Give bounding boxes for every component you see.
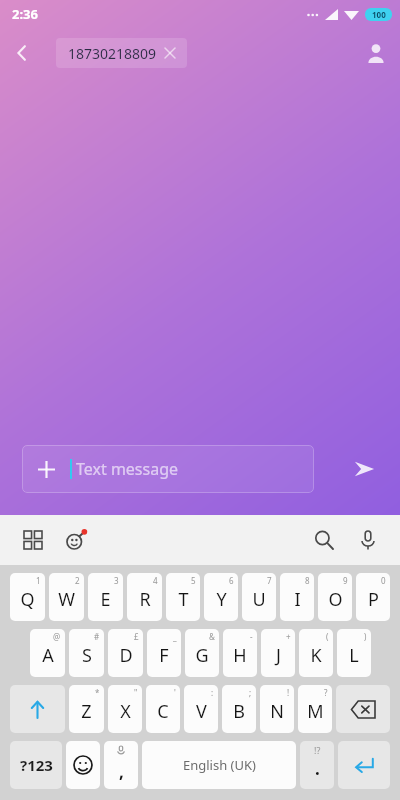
staticText: ; bbox=[249, 687, 252, 698]
button[interactable]: 1 bbox=[10, 573, 45, 621]
button[interactable]: @ bbox=[30, 629, 65, 677]
button[interactable]: : bbox=[184, 685, 218, 733]
staticText: 4 bbox=[153, 575, 158, 586]
staticText: 2 bbox=[75, 575, 80, 586]
staticText: Y bbox=[216, 587, 227, 612]
button[interactable]: 0 bbox=[356, 573, 390, 621]
staticText: ( bbox=[326, 631, 329, 642]
staticText: O bbox=[328, 587, 343, 612]
staticText: " bbox=[134, 687, 138, 698]
staticText: F bbox=[159, 643, 169, 668]
button[interactable]: Back bbox=[0, 31, 44, 75]
staticText: , bbox=[119, 760, 124, 783]
staticText: + bbox=[286, 631, 291, 642]
staticText: @ bbox=[53, 631, 61, 642]
staticText: U bbox=[252, 587, 266, 612]
staticText: J bbox=[276, 643, 281, 668]
staticText: R bbox=[139, 587, 151, 612]
staticText: ) bbox=[364, 631, 367, 642]
staticText: 7 bbox=[267, 575, 272, 586]
staticText: D bbox=[119, 643, 133, 668]
staticText: # bbox=[94, 631, 100, 642]
button[interactable]: 2 bbox=[49, 573, 84, 621]
button[interactable]: 5 bbox=[166, 573, 200, 621]
button[interactable]: Send bbox=[340, 445, 388, 493]
staticText: ? bbox=[324, 687, 328, 698]
staticText: B bbox=[233, 699, 245, 724]
staticText: T bbox=[178, 587, 189, 612]
staticText: C bbox=[157, 699, 169, 724]
staticText: M bbox=[307, 699, 324, 724]
button[interactable]: & bbox=[185, 629, 219, 677]
button[interactable]: ; bbox=[222, 685, 256, 733]
button[interactable]: - bbox=[223, 629, 257, 677]
staticText: 6 bbox=[229, 575, 234, 586]
staticText: 3 bbox=[114, 575, 119, 586]
button[interactable]: ' bbox=[146, 685, 180, 733]
button[interactable]: Contact bbox=[352, 29, 400, 77]
staticText: & bbox=[209, 631, 215, 642]
button[interactable]: , bbox=[104, 741, 138, 789]
button[interactable]: ( bbox=[299, 629, 333, 677]
staticText: - bbox=[250, 631, 253, 642]
staticText: G bbox=[195, 643, 209, 668]
button[interactable]: _ bbox=[147, 629, 181, 677]
button[interactable]: 6 bbox=[204, 573, 238, 621]
button[interactable]: 7 bbox=[242, 573, 276, 621]
button[interactable]: English (UK) bbox=[142, 741, 296, 789]
staticText: 9 bbox=[343, 575, 348, 586]
button[interactable] bbox=[66, 741, 100, 789]
staticText: 18730218809 bbox=[68, 44, 157, 63]
staticText: L bbox=[349, 643, 359, 668]
button[interactable]: 4 bbox=[127, 573, 162, 621]
staticText: E bbox=[100, 587, 111, 612]
button[interactable]: ! bbox=[260, 685, 294, 733]
button[interactable]: ) bbox=[337, 629, 371, 677]
staticText: H bbox=[233, 643, 247, 668]
button[interactable]: !? bbox=[300, 741, 334, 789]
button[interactable]: Enter bbox=[338, 741, 390, 789]
button[interactable]: Voice input bbox=[350, 522, 386, 558]
staticText: S bbox=[82, 643, 92, 668]
staticText: A bbox=[42, 643, 54, 668]
button[interactable]: + bbox=[261, 629, 295, 677]
staticText: English (UK) bbox=[183, 756, 256, 774]
staticText: !? bbox=[314, 744, 321, 756]
staticText: Q bbox=[20, 587, 35, 612]
button[interactable]: Stickers bbox=[58, 522, 94, 558]
button[interactable]: # bbox=[69, 629, 104, 677]
button[interactable]: 9 bbox=[318, 573, 352, 621]
button[interactable]: £ bbox=[108, 629, 143, 677]
staticText: ! bbox=[287, 687, 290, 698]
staticText: 2:36 bbox=[12, 5, 38, 23]
staticText: : bbox=[211, 687, 214, 698]
staticText: 100 bbox=[372, 9, 386, 20]
staticText: X bbox=[120, 699, 131, 724]
staticText: 0 bbox=[381, 575, 386, 586]
button[interactable]: 8 bbox=[280, 573, 314, 621]
staticText: * bbox=[95, 687, 100, 698]
staticText: I bbox=[294, 587, 301, 612]
staticText: £ bbox=[134, 631, 139, 642]
button[interactable]: 18730218809 bbox=[56, 38, 187, 68]
button[interactable]: Apps bbox=[16, 523, 50, 557]
staticText: P bbox=[368, 587, 379, 612]
staticText: 8 bbox=[305, 575, 310, 586]
button[interactable] bbox=[10, 685, 65, 733]
staticText: Text message bbox=[76, 458, 179, 480]
button[interactable]: Search bbox=[306, 522, 342, 558]
staticText: N bbox=[270, 699, 284, 724]
button[interactable]: ?123 bbox=[10, 741, 62, 789]
staticText: W bbox=[58, 587, 75, 612]
button[interactable]: " bbox=[108, 685, 142, 733]
button[interactable]: Backspace bbox=[336, 685, 390, 733]
button[interactable]: ? bbox=[298, 685, 332, 733]
staticText: K bbox=[310, 643, 322, 668]
button[interactable]: * bbox=[69, 685, 104, 733]
staticText: ' bbox=[174, 687, 176, 698]
staticText: ?123 bbox=[20, 755, 53, 775]
staticText: 1 bbox=[36, 575, 41, 586]
staticText: _ bbox=[173, 631, 177, 642]
button[interactable]: 3 bbox=[88, 573, 123, 621]
button[interactable]: Text message bbox=[22, 445, 314, 493]
